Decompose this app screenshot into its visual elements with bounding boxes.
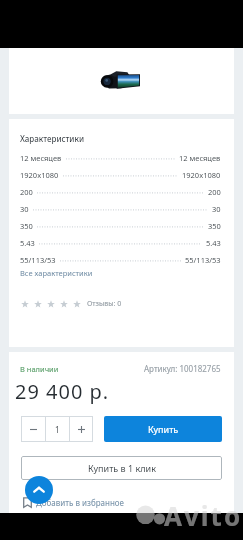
staticText: 1920x1080 — [182, 170, 221, 180]
button[interactable]: Все характеристики — [20, 268, 93, 278]
staticText: Отзывы: 0 — [87, 299, 122, 309]
staticText: 5.43 — [20, 238, 35, 248]
staticText: Артикул: 100182765 — [144, 363, 221, 374]
button[interactable]: Купить — [104, 416, 222, 442]
button[interactable]: Наверх — [25, 476, 53, 504]
button[interactable]: Добавить в избранное — [23, 497, 124, 508]
button[interactable]: Уменьшить количество — [21, 416, 45, 442]
staticText: 12 месяцев — [20, 153, 62, 163]
staticText: 5.43 — [206, 238, 221, 248]
staticText: Все характеристики — [20, 268, 93, 278]
staticText: Купить — [148, 423, 179, 435]
staticText: 350 — [208, 221, 221, 231]
staticText: 30 — [20, 204, 29, 214]
staticText: 350 — [20, 221, 33, 231]
button[interactable]: Увеличить количество — [70, 416, 93, 442]
staticText: 29 400 р. — [15, 378, 110, 405]
staticText: 55/113/53 — [20, 255, 56, 265]
staticText: 12 месяцев — [179, 153, 221, 163]
button[interactable]: Купить в 1 клик — [21, 456, 222, 480]
button[interactable]: Отзывы: 0 — [21, 299, 122, 309]
staticText: 1 — [55, 424, 60, 435]
staticText: Купить в 1 клик — [88, 462, 156, 474]
staticText: 1920x1080 — [20, 170, 59, 180]
staticText: 55/113/53 — [185, 255, 221, 265]
staticText: Добавить в избранное — [36, 497, 124, 508]
staticText: 30 — [212, 204, 221, 214]
staticText: В наличии — [20, 364, 59, 374]
staticText: 200 — [20, 187, 33, 197]
staticText: Характеристики — [20, 133, 84, 144]
staticText: 200 — [208, 187, 221, 197]
staticText: Avito — [164, 498, 243, 533]
